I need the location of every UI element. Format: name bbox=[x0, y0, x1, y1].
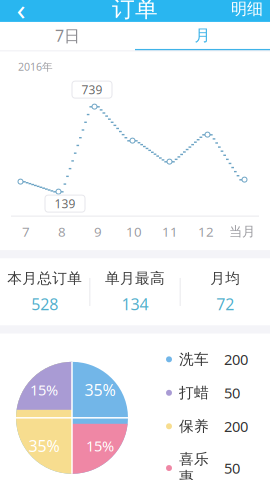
staticText: 35% bbox=[84, 379, 115, 400]
staticText: 打蜡 bbox=[179, 384, 209, 402]
staticText: 月 bbox=[194, 26, 210, 45]
staticText: 200 bbox=[224, 416, 248, 436]
button[interactable]: 7日 bbox=[0, 22, 135, 49]
staticText: 50 bbox=[224, 383, 240, 403]
staticText: 739 bbox=[81, 82, 102, 97]
staticText: 72 bbox=[216, 293, 234, 314]
staticText: 35% bbox=[28, 435, 59, 456]
staticText: 139 bbox=[54, 196, 75, 211]
staticText: 喜乐惠 bbox=[179, 450, 209, 480]
staticText: 月均 bbox=[210, 269, 240, 287]
staticText: 134 bbox=[121, 293, 148, 314]
staticText: 7 bbox=[22, 223, 30, 240]
staticText: 保养 bbox=[179, 417, 209, 435]
button[interactable]: 返回 bbox=[0, 0, 42, 22]
staticText: 15% bbox=[86, 436, 114, 456]
staticText: 528 bbox=[31, 293, 58, 314]
staticText: 8 bbox=[58, 223, 66, 240]
staticText: 单月最高 bbox=[105, 269, 165, 287]
staticText: 7日 bbox=[55, 25, 80, 46]
staticText: ‹ bbox=[16, 0, 25, 28]
button[interactable]: 月 bbox=[135, 22, 270, 49]
staticText: 明细 bbox=[231, 0, 263, 19]
staticText: 12 bbox=[198, 223, 214, 240]
staticText: 洗车 bbox=[179, 350, 209, 368]
staticText: 15% bbox=[30, 380, 58, 400]
staticText: 9 bbox=[94, 223, 102, 240]
staticText: 50 bbox=[224, 458, 240, 478]
staticText: 10 bbox=[126, 223, 142, 240]
staticText: 11 bbox=[162, 223, 178, 240]
staticText: 本月总订单 bbox=[7, 269, 82, 287]
staticText: 200 bbox=[224, 350, 248, 369]
staticText: 订单 bbox=[112, 0, 158, 23]
staticText: 当月 bbox=[229, 223, 255, 240]
staticText: 2016年 bbox=[18, 59, 53, 74]
button[interactable]: 明细 bbox=[224, 0, 270, 22]
